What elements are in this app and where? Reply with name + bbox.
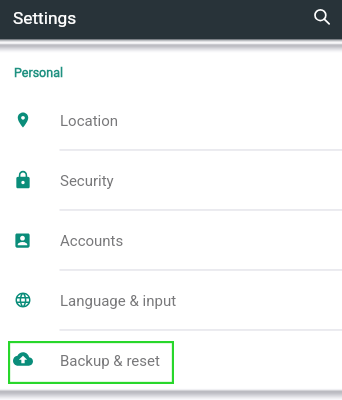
button[interactable]: Search bbox=[307, 2, 333, 28]
staticText: Personal bbox=[14, 65, 63, 80]
staticText: Security bbox=[60, 172, 114, 190]
button[interactable]: Language & input bbox=[0, 270, 342, 330]
button[interactable]: Location bbox=[0, 90, 342, 150]
staticText: Settings bbox=[13, 8, 77, 28]
button[interactable]: Security bbox=[0, 150, 342, 210]
button[interactable]: Accounts bbox=[0, 210, 342, 270]
staticText: Backup & reset bbox=[60, 352, 160, 370]
staticText: Accounts bbox=[60, 232, 124, 250]
staticText: Language & input bbox=[60, 292, 177, 310]
staticText: Location bbox=[60, 112, 119, 130]
button[interactable]: Backup & reset bbox=[0, 330, 342, 390]
